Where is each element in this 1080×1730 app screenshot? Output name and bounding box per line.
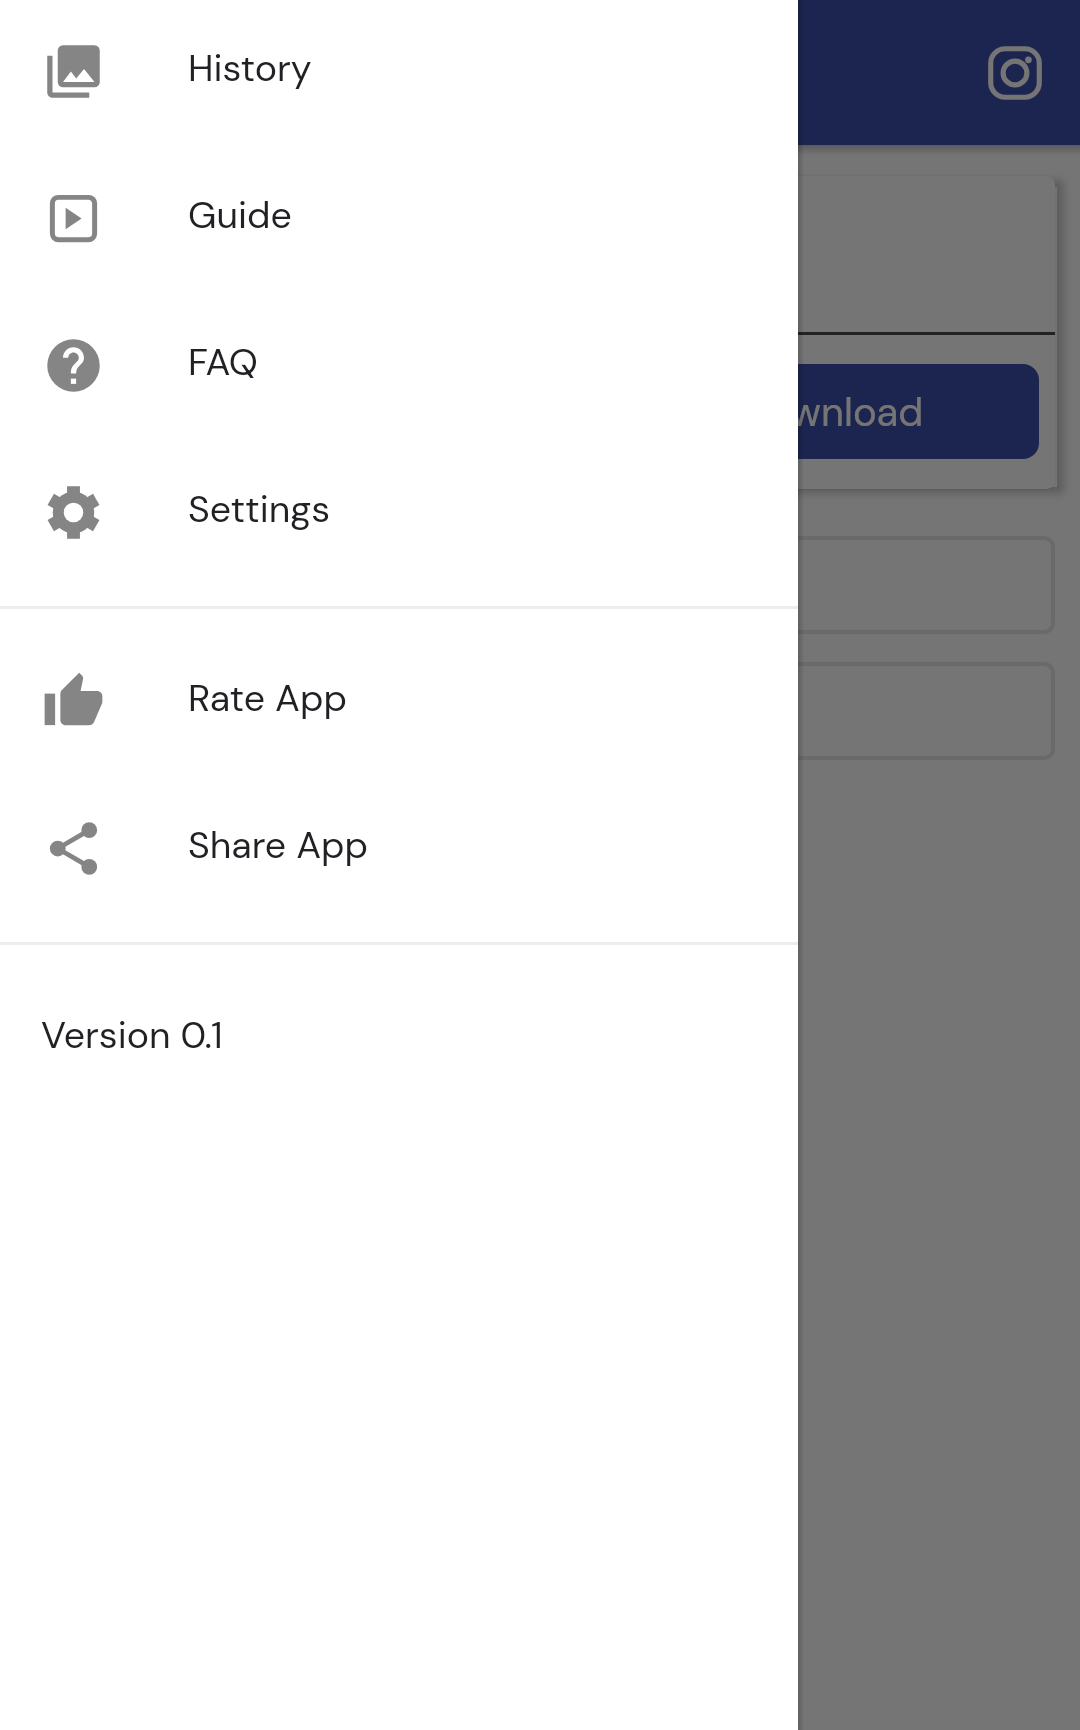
staticText: History <box>188 44 312 93</box>
staticText: Guide <box>188 191 292 240</box>
staticText: Download <box>740 386 924 438</box>
button[interactable]: FAQ <box>0 292 798 439</box>
button[interactable]: Download <box>625 364 1039 459</box>
button[interactable]: Settings <box>0 439 798 586</box>
button[interactable]: History <box>0 0 798 145</box>
button[interactable]: Version 0.1 <box>0 945 798 1124</box>
staticText: Share App <box>188 821 368 870</box>
staticText: FAQ <box>188 338 258 387</box>
staticText: Version 0.1 <box>41 1011 223 1060</box>
button[interactable]: Instagram <box>969 27 1061 119</box>
button[interactable]: Share App <box>0 775 798 922</box>
staticText: Rate App <box>188 674 347 723</box>
staticText: Settings <box>188 485 331 534</box>
button[interactable]: Rate App <box>0 628 798 775</box>
button[interactable]: Guide <box>0 145 798 292</box>
